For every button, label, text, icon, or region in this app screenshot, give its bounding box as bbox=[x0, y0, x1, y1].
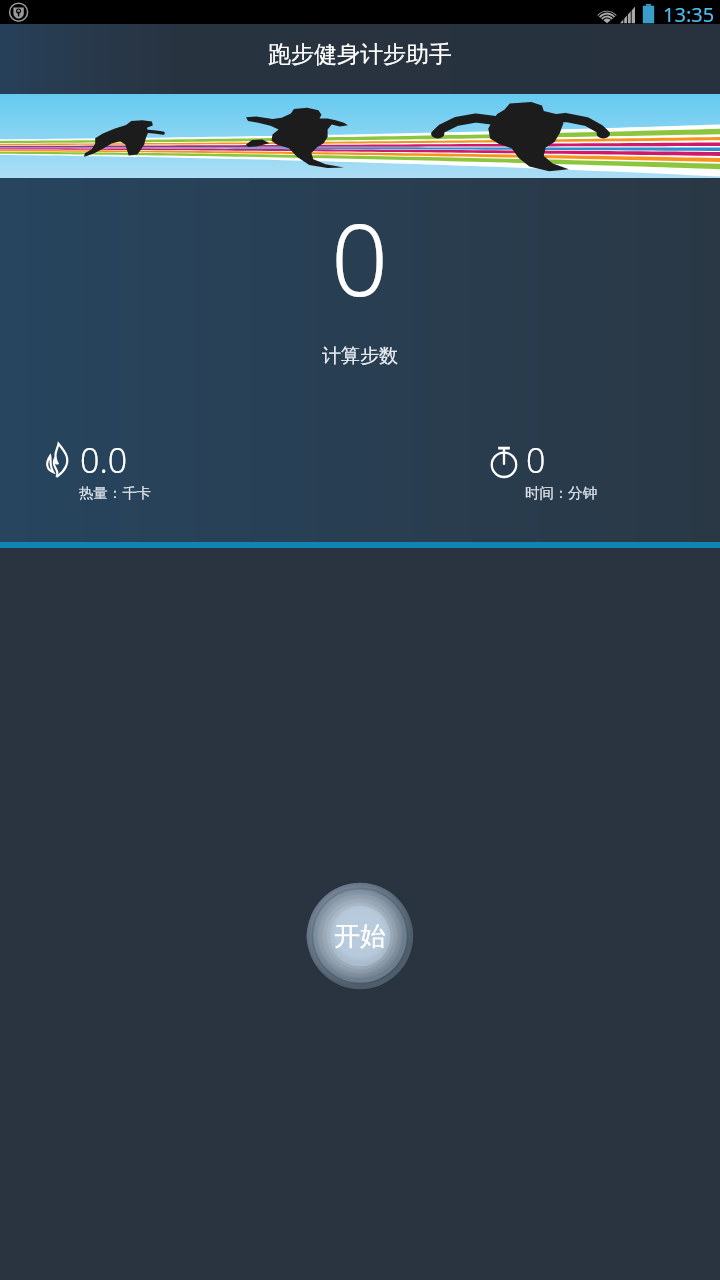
staticText: 13:35 bbox=[663, 1, 715, 25]
staticText: 计算步数 bbox=[322, 344, 398, 368]
staticText: 0 bbox=[331, 189, 389, 325]
staticText: 开始 bbox=[334, 920, 386, 953]
staticText: 时间：分钟 bbox=[525, 484, 597, 502]
staticText: 0 bbox=[526, 437, 546, 483]
staticText: 跑步健身计步助手 bbox=[268, 40, 452, 69]
staticText: 0.0 bbox=[80, 437, 128, 483]
button[interactable]: 开始 bbox=[306, 882, 414, 990]
staticText: 热量：千卡 bbox=[79, 484, 151, 502]
